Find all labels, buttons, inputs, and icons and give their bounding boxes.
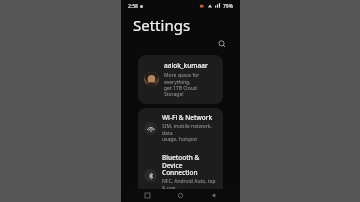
staticText: More space for everything, get 1TB Cloud… — [164, 72, 217, 98]
button[interactable]: Bluetooth & Device Connection — [138, 148, 223, 202]
button[interactable]: aalok_kumaar — [138, 55, 223, 104]
button[interactable]: Home — [174, 189, 187, 202]
staticText: Settings — [133, 15, 191, 35]
staticText: 79% — [223, 3, 233, 10]
button[interactable]: Wi-Fi & Network — [138, 108, 223, 148]
button[interactable]: Recent apps — [141, 189, 154, 202]
staticText: aalok_kumaar — [164, 61, 208, 70]
button[interactable]: Back — [207, 189, 220, 202]
staticText: Bluetooth & Device Connection — [162, 153, 217, 177]
staticText: 2:58 — [128, 3, 138, 10]
staticText: NFC, Android Auto, tap & pay, cast — [162, 178, 217, 197]
button[interactable]: Search settings — [216, 38, 228, 50]
staticText: SIM, mobile network, data usage, hotspot — [162, 123, 217, 143]
staticText: Wi-Fi & Network — [162, 113, 213, 122]
